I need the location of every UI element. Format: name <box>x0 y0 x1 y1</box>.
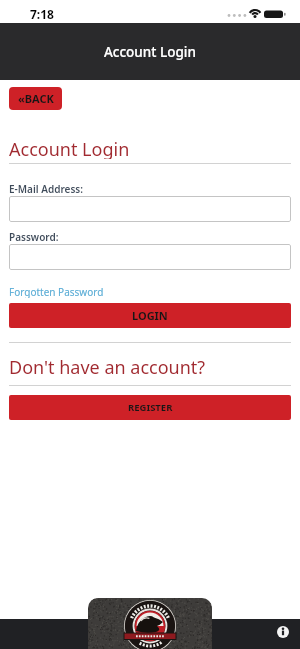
button[interactable]: LOGIN <box>9 303 291 328</box>
button[interactable] <box>88 598 212 649</box>
staticText: Account Login <box>9 137 130 159</box>
staticText: Don't have an account? <box>9 355 206 377</box>
button[interactable] <box>277 626 289 638</box>
button[interactable]: REGISTER <box>9 395 291 420</box>
staticText: 7:18 <box>30 6 54 22</box>
button[interactable]: Forgotten Password <box>9 285 104 298</box>
staticText: REGISTER <box>128 401 173 414</box>
button[interactable]: «BACK <box>9 87 62 110</box>
staticText: «BACK <box>18 91 54 106</box>
staticText: Account Login <box>104 43 196 61</box>
staticText: LOGIN <box>132 308 168 323</box>
staticText: Password: <box>9 230 59 243</box>
staticText: E-Mail Address: <box>9 182 84 195</box>
button[interactable] <box>9 244 291 270</box>
staticText: Forgotten Password <box>9 285 104 298</box>
button[interactable] <box>9 196 291 222</box>
